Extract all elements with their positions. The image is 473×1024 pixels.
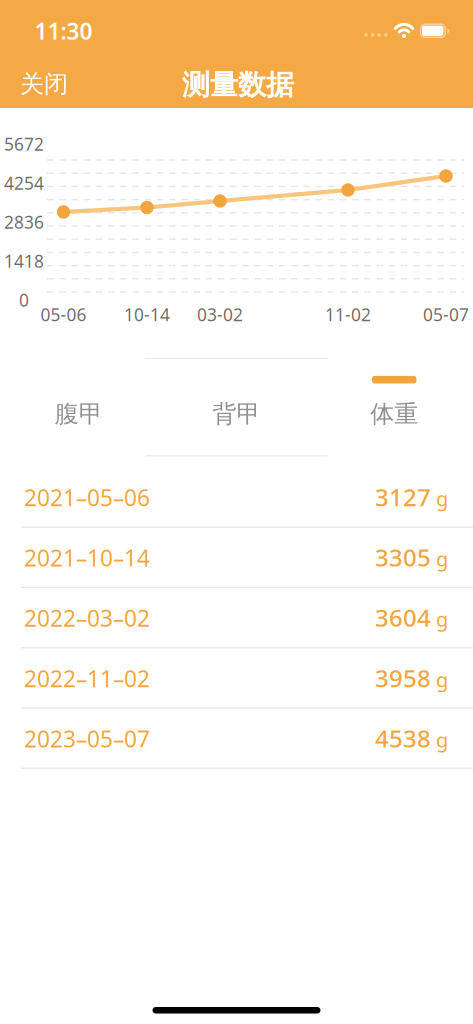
staticText: 03-02: [197, 303, 243, 326]
button[interactable]: 关闭: [9, 62, 79, 106]
staticText: 4538: [375, 722, 431, 754]
staticText: 2021–05–06: [24, 482, 150, 512]
staticText: 3305: [375, 541, 431, 573]
staticText: 11:30: [34, 16, 92, 46]
staticText: 05-06: [40, 303, 86, 326]
button[interactable]: 腹甲: [0, 382, 157, 446]
staticText: 3604: [375, 602, 431, 633]
staticText: 3127: [375, 481, 431, 513]
staticText: 2022–03–02: [24, 603, 150, 633]
staticText: 11-02: [325, 303, 371, 326]
button[interactable]: 体重: [316, 382, 473, 446]
staticText: 10-14: [124, 303, 170, 326]
staticText: 05-07: [423, 303, 469, 326]
staticText: g: [436, 666, 448, 693]
staticText: g: [436, 545, 448, 572]
staticText: g: [436, 485, 448, 512]
staticText: 2023–05–07: [24, 724, 150, 754]
button[interactable]: 背甲: [158, 382, 315, 446]
staticText: 2836: [4, 210, 44, 233]
staticText: 背甲: [212, 399, 260, 429]
staticText: 1418: [4, 249, 44, 272]
staticText: 0: [19, 288, 29, 311]
staticText: 关闭: [20, 69, 68, 99]
staticText: 3958: [375, 662, 431, 694]
staticText: 2021–10–14: [24, 543, 150, 573]
staticText: 5672: [4, 132, 44, 155]
staticText: 体重: [370, 399, 418, 429]
staticText: g: [436, 726, 448, 753]
staticText: 2022–11–02: [24, 663, 150, 693]
staticText: g: [436, 606, 448, 632]
staticText: 测量数据: [182, 68, 294, 102]
staticText: 4254: [4, 171, 44, 194]
staticText: 腹甲: [55, 399, 103, 429]
